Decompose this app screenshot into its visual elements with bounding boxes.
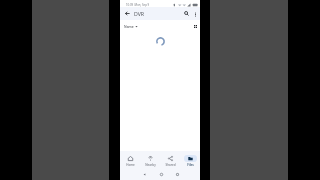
button[interactable]: Recent apps <box>175 172 180 177</box>
button[interactable]: Shared <box>160 155 180 167</box>
button[interactable]: Files <box>180 155 200 167</box>
staticText: Files <box>187 163 194 167</box>
staticText: DVR <box>134 10 145 17</box>
button[interactable]: Search <box>182 9 191 18</box>
staticText: Home <box>126 163 135 167</box>
staticText: Name <box>124 24 134 29</box>
button[interactable]: Home <box>120 155 140 167</box>
button[interactable]: Home <box>159 172 164 177</box>
staticText: Shared <box>165 163 176 167</box>
button[interactable]: Back <box>142 172 147 177</box>
button[interactable]: Switch to grid view <box>192 23 199 30</box>
staticText: Nearby <box>145 163 156 167</box>
button[interactable]: Name <box>124 24 138 29</box>
button[interactable]: Nearby <box>140 155 160 167</box>
staticText: 10:09 Mon, Sep 9 <box>126 3 150 7</box>
button[interactable]: More options <box>191 10 199 18</box>
button[interactable]: Navigate up <box>123 9 132 18</box>
